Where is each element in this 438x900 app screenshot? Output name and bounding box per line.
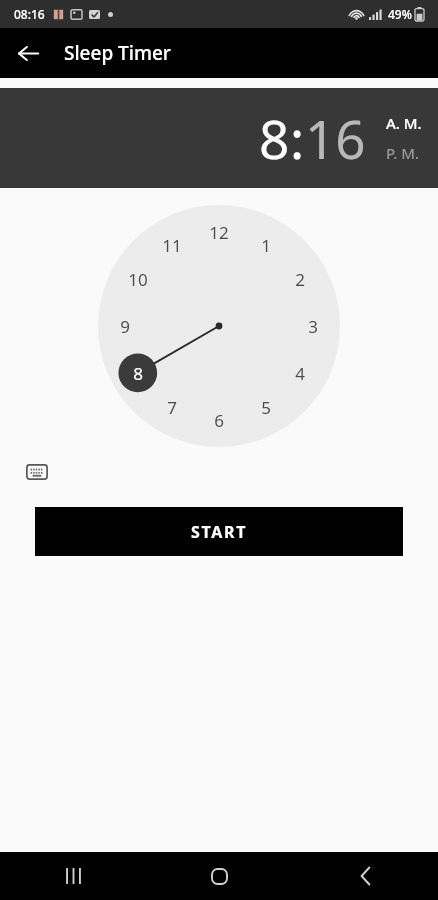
staticText: Sleep Timer bbox=[64, 40, 171, 66]
staticText: 9 bbox=[120, 315, 130, 338]
button[interactable]: Back bbox=[4, 29, 52, 77]
staticText: 6 bbox=[214, 409, 224, 432]
button[interactable]: P. M. bbox=[386, 143, 420, 163]
staticText: 08:16 bbox=[14, 6, 45, 22]
staticText: 16 bbox=[305, 102, 366, 174]
button[interactable]: A. M. bbox=[386, 113, 422, 133]
staticText: 3 bbox=[308, 315, 318, 338]
staticText: 8 bbox=[133, 362, 143, 385]
staticText: 10 bbox=[128, 268, 148, 291]
staticText: P. M. bbox=[386, 143, 420, 163]
staticText: : bbox=[290, 102, 305, 174]
staticText: 1 bbox=[261, 234, 271, 257]
staticText: 5 bbox=[261, 396, 271, 419]
button[interactable]: Switch to keyboard input bbox=[18, 453, 56, 491]
staticText: 4 bbox=[295, 362, 305, 385]
button[interactable]: 1 bbox=[98, 205, 340, 447]
staticText: 7 bbox=[167, 396, 177, 419]
staticText: 49% bbox=[388, 6, 412, 22]
staticText: A. M. bbox=[386, 113, 422, 133]
button[interactable]: Home bbox=[146, 852, 292, 900]
button[interactable]: Back bbox=[292, 852, 438, 900]
button[interactable]: Recent apps bbox=[0, 852, 146, 900]
button[interactable]: 16 bbox=[305, 102, 366, 174]
staticText: 8 bbox=[259, 102, 290, 174]
staticText: 2 bbox=[295, 268, 305, 291]
button[interactable]: 8 bbox=[259, 102, 290, 174]
button[interactable]: START bbox=[35, 507, 403, 556]
staticText: START bbox=[191, 521, 248, 543]
staticText: 11 bbox=[162, 234, 182, 257]
staticText: 12 bbox=[209, 221, 229, 244]
